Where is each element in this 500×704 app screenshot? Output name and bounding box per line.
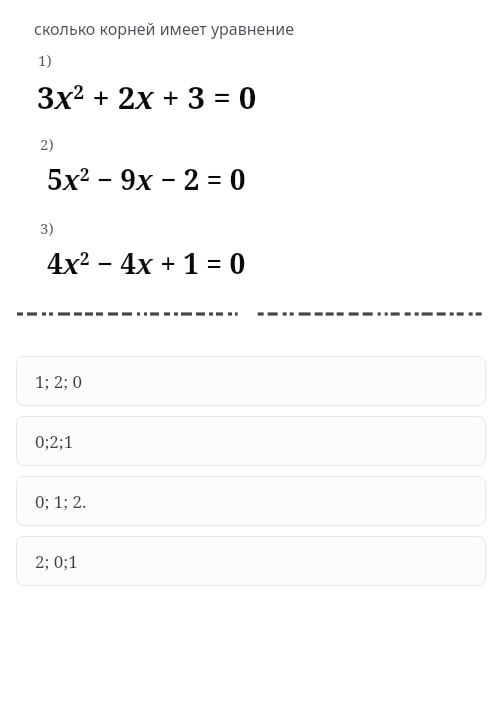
staticText: 1; 2; 0 (35, 370, 83, 393)
button[interactable]: 0; 1; 2. (16, 476, 486, 526)
staticText: 3) (40, 218, 54, 238)
staticText: 3x2 + 2x + 3 = 0 (37, 76, 257, 118)
staticText: сколько корней имеет уравнение (34, 18, 294, 40)
staticText: 5x2 − 9x − 2 = 0 (47, 160, 246, 198)
button[interactable]: 0;2;1 (16, 416, 486, 466)
button[interactable]: 2; 0;1 (16, 536, 486, 586)
staticText: 4x2 − 4x + 1 = 0 (47, 244, 246, 282)
staticText: 2) (40, 134, 54, 154)
staticText: 2; 0;1 (35, 550, 78, 573)
staticText: 0; 1; 2. (35, 490, 87, 513)
staticText: 1) (38, 50, 52, 70)
staticText: 0;2;1 (35, 430, 74, 453)
button[interactable]: 1; 2; 0 (16, 356, 486, 406)
